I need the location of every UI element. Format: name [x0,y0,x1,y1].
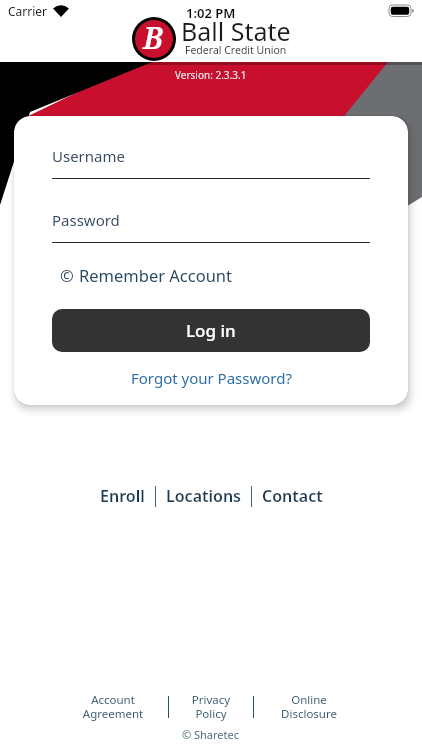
staticText: Log in [186,319,236,342]
staticText: Ball State [181,14,291,48]
staticText: Carrier [8,3,48,19]
button[interactable]: Username [52,146,370,179]
button[interactable]: Password [52,210,370,243]
button[interactable]: Privacy Policy [169,692,253,721]
button[interactable]: Locations [166,485,241,507]
staticText: Remember Account [79,264,233,286]
staticText: Username [52,146,125,166]
button[interactable]: Forgot your Password? [52,368,370,388]
button[interactable]: Log in [52,309,370,352]
staticText: © Sharetec [182,727,240,742]
button[interactable]: © [52,264,233,286]
staticText: Version: 2.3.3.1 [175,68,247,82]
staticText: Forgot your Password? [131,368,292,388]
staticText: 1:02 PM [186,4,236,22]
button[interactable]: Enroll [100,485,145,507]
staticText: © [60,264,74,286]
button[interactable]: Online Disclosure [254,692,364,721]
staticText: Password [52,210,120,230]
button[interactable]: Account Agreement [58,692,168,721]
staticText: B [143,17,163,58]
button[interactable]: Contact [262,485,323,507]
staticText: Federal Credit Union [185,43,287,57]
